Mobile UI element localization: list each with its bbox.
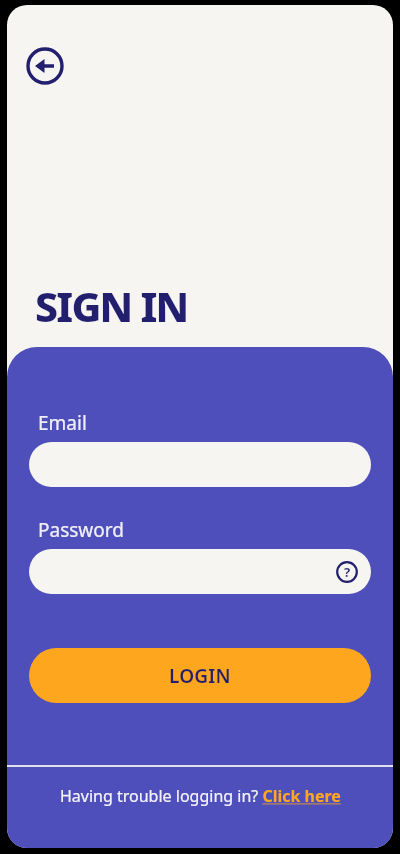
button[interactable]: ? (29, 549, 371, 594)
staticText: LOGIN (169, 663, 231, 689)
button[interactable] (20, 41, 70, 91)
button[interactable] (29, 442, 371, 487)
button[interactable]: Having trouble logging in? Click here (7, 785, 393, 807)
button[interactable]: LOGIN (29, 648, 371, 703)
staticText: Having trouble logging in? Click here (60, 785, 341, 807)
staticText: Email (38, 410, 87, 436)
staticText: ? (344, 563, 351, 581)
staticText: SIGN IN (35, 278, 188, 334)
staticText: Password (38, 517, 124, 543)
